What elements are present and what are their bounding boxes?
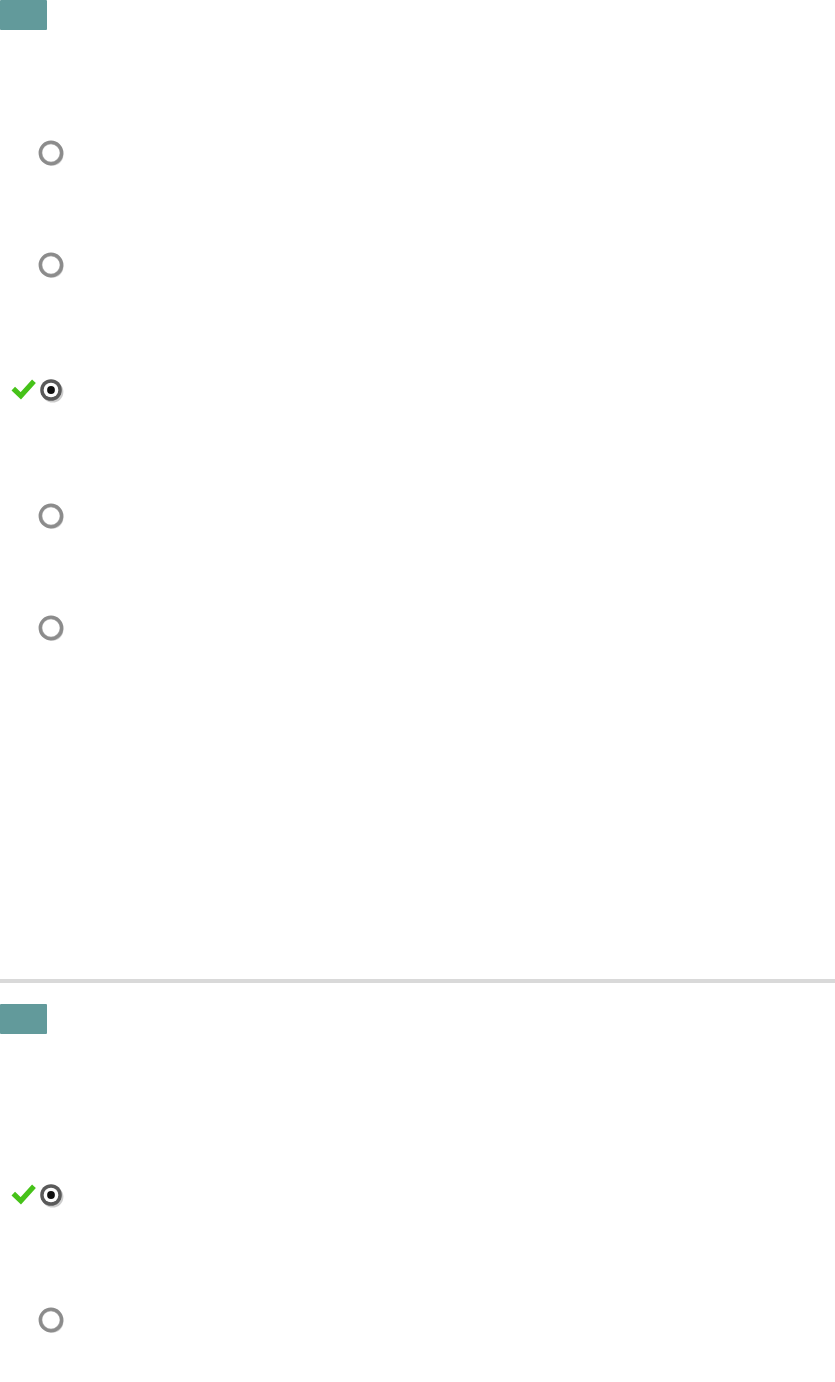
- button[interactable]: Option: [0, 1307, 835, 1333]
- button[interactable]: Selected option: [0, 377, 835, 403]
- button[interactable]: Option: [0, 140, 835, 166]
- other: Answered: [14, 381, 33, 399]
- button[interactable]: Selected option: [0, 1182, 835, 1208]
- other: Answered: [14, 1186, 33, 1204]
- button[interactable]: Option: [0, 252, 835, 278]
- button[interactable]: Option: [0, 503, 835, 529]
- button[interactable]: Option: [0, 615, 835, 641]
